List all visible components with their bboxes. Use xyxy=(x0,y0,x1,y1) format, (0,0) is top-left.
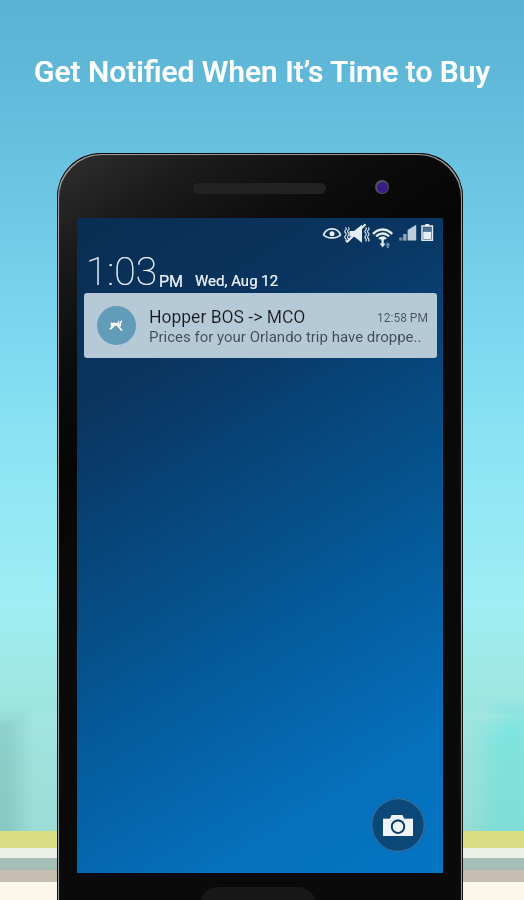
staticText: Hopper BOS -> MCO xyxy=(149,307,306,328)
staticText: Prices for your Orlando trip have droppe… xyxy=(149,328,422,346)
staticText: 12:58 PM xyxy=(377,311,428,325)
staticText: Wed, Aug 12 xyxy=(195,272,279,290)
button[interactable]: Camera xyxy=(371,798,425,852)
staticText: Get Notified When It’s Time to Buy xyxy=(34,54,491,89)
button[interactable]: Hopper BOS -> MCO xyxy=(84,293,437,358)
staticText: 1:03 xyxy=(86,249,157,295)
staticText: PM xyxy=(159,272,184,291)
